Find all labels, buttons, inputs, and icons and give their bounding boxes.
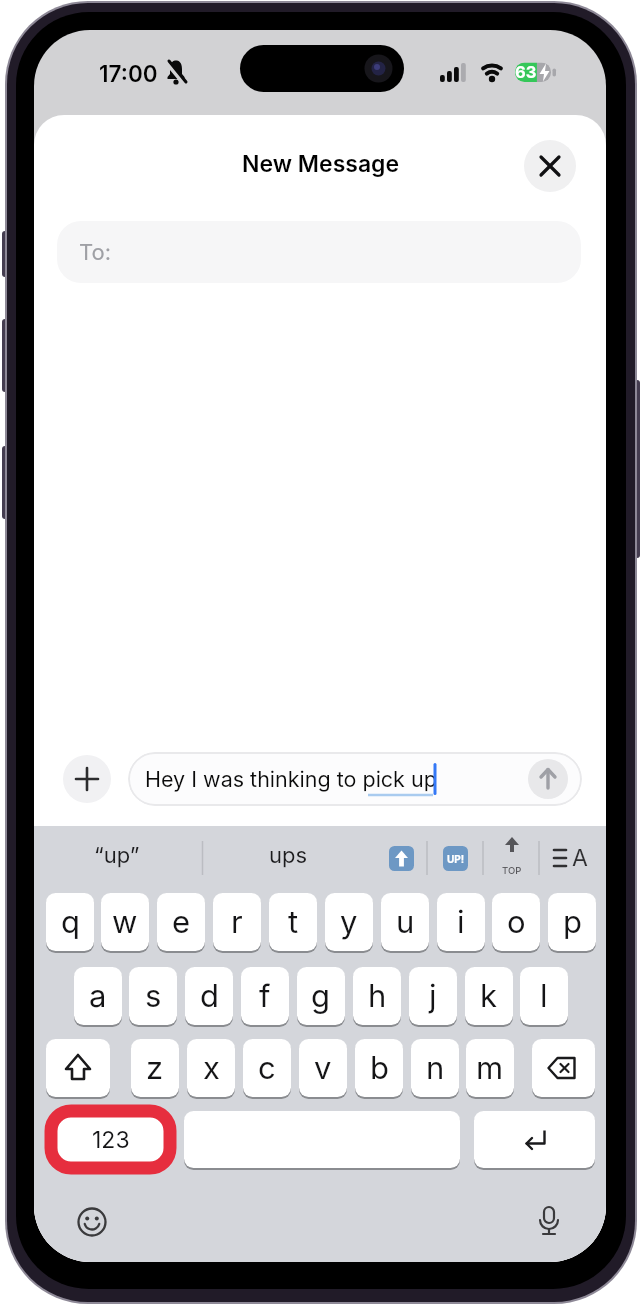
staticText: e: [172, 903, 191, 941]
button[interactable]: i: [437, 893, 485, 951]
button[interactable]: f: [241, 967, 289, 1025]
button[interactable]: t: [269, 893, 317, 951]
button[interactable]: [527, 1200, 571, 1244]
staticText: ups: [269, 842, 308, 869]
button[interactable]: m: [466, 1039, 514, 1097]
button[interactable]: [532, 1039, 595, 1097]
staticText: f: [259, 977, 271, 1015]
button[interactable]: w: [101, 893, 149, 951]
staticText: q: [61, 903, 80, 941]
staticText: TOP: [502, 865, 522, 876]
button[interactable]: b: [355, 1039, 403, 1097]
button[interactable]: “up”: [54, 829, 180, 881]
button[interactable]: g: [297, 967, 345, 1025]
staticText: k: [480, 977, 498, 1015]
button[interactable]: r: [213, 893, 261, 951]
staticText: v: [314, 1049, 332, 1087]
button[interactable]: UP!: [443, 846, 468, 871]
staticText: Hey I was thinking to pick up: [145, 766, 437, 792]
button[interactable]: e: [157, 893, 205, 951]
button[interactable]: q: [46, 893, 94, 951]
staticText: b: [370, 1049, 389, 1087]
button[interactable]: [63, 755, 111, 803]
button[interactable]: [184, 1111, 460, 1168]
button[interactable]: p: [548, 893, 596, 951]
staticText: t: [288, 903, 299, 941]
staticText: y: [340, 903, 358, 941]
button[interactable]: ups: [224, 829, 352, 881]
staticText: To:: [79, 239, 112, 266]
button[interactable]: To:: [57, 221, 581, 283]
button[interactable]: l: [520, 967, 568, 1025]
staticText: 123: [92, 1126, 130, 1154]
staticText: i: [457, 903, 465, 941]
button[interactable]: d: [185, 967, 233, 1025]
staticText: c: [258, 1049, 276, 1087]
button[interactable]: y: [325, 893, 373, 951]
staticText: a: [89, 977, 107, 1015]
staticText: UP!: [447, 853, 465, 865]
staticText: n: [426, 1049, 445, 1087]
button[interactable]: [474, 1111, 595, 1168]
button[interactable]: [389, 846, 414, 871]
button[interactable]: o: [492, 893, 540, 951]
button[interactable]: [524, 140, 576, 192]
staticText: d: [200, 977, 219, 1015]
staticText: u: [396, 903, 415, 941]
button[interactable]: n: [411, 1039, 459, 1097]
staticText: j: [429, 977, 437, 1015]
button[interactable]: c: [243, 1039, 291, 1097]
button[interactable]: 123: [51, 1111, 170, 1168]
staticText: m: [476, 1049, 504, 1087]
staticText: s: [145, 977, 162, 1015]
staticText: x: [203, 1049, 220, 1087]
button[interactable]: Hey I was thinking to pick up: [128, 752, 582, 806]
button[interactable]: z: [131, 1039, 179, 1097]
button[interactable]: v: [299, 1039, 347, 1097]
staticText: w: [112, 903, 138, 941]
staticText: z: [146, 1049, 164, 1087]
button[interactable]: j: [409, 967, 457, 1025]
staticText: o: [507, 903, 526, 941]
staticText: New Message: [242, 150, 400, 178]
button[interactable]: s: [129, 967, 177, 1025]
staticText: p: [563, 903, 582, 941]
staticText: h: [368, 977, 387, 1015]
button[interactable]: A: [546, 834, 594, 882]
staticText: l: [540, 977, 548, 1015]
button[interactable]: [46, 1039, 110, 1097]
button[interactable]: TOP: [490, 834, 534, 882]
staticText: 63: [515, 62, 537, 82]
staticText: “up”: [94, 842, 140, 869]
staticText: 17:00: [99, 60, 158, 87]
button[interactable]: [70, 1200, 114, 1244]
button[interactable]: x: [187, 1039, 235, 1097]
staticText: r: [231, 903, 243, 941]
button[interactable]: a: [74, 967, 122, 1025]
button[interactable]: k: [465, 967, 513, 1025]
button[interactable]: u: [381, 893, 429, 951]
staticText: A: [572, 844, 588, 872]
button[interactable]: [528, 759, 568, 799]
staticText: g: [311, 977, 331, 1015]
button[interactable]: h: [353, 967, 401, 1025]
